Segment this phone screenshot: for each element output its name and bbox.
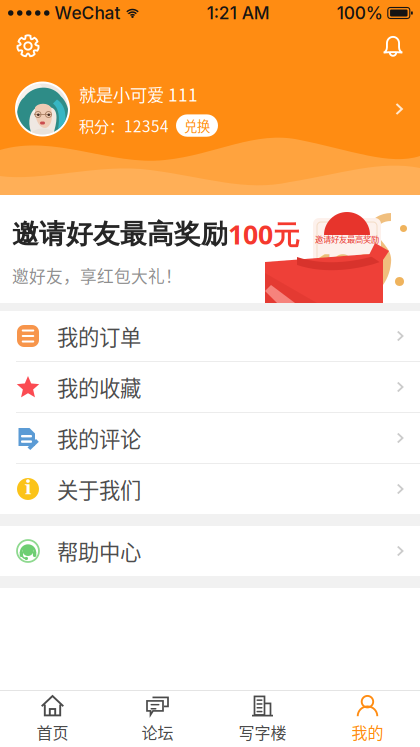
button[interactable]: 我的 bbox=[315, 691, 420, 747]
staticText: 我的 bbox=[351, 720, 383, 744]
staticText: 就是小可爱 111 bbox=[79, 81, 198, 106]
staticText: 我的评论 bbox=[57, 423, 141, 453]
staticText: 100元 bbox=[228, 216, 300, 252]
staticText: 帮助中心 bbox=[57, 536, 141, 566]
button[interactable]: 我的收藏 bbox=[0, 362, 420, 412]
button[interactable]: 论坛 bbox=[105, 691, 210, 747]
staticText: 关于我们 bbox=[57, 474, 141, 504]
staticText: 邀请好友最高奖励 bbox=[315, 233, 379, 245]
button[interactable]: Settings bbox=[4, 26, 52, 66]
staticText: 1:21 AM bbox=[207, 2, 270, 23]
staticText: 100 bbox=[318, 246, 376, 286]
staticText: WeChat bbox=[49, 2, 125, 23]
button[interactable]: 我的评论 bbox=[0, 413, 420, 463]
staticText: 我的订单 bbox=[57, 321, 141, 351]
staticText: 兑换 bbox=[184, 116, 210, 135]
button[interactable]: 就是小可爱 111 bbox=[0, 72, 420, 146]
staticText: 邀请好友最高奖励 bbox=[12, 217, 228, 251]
staticText: 邀好友，享红包大礼！ bbox=[12, 263, 182, 287]
button[interactable]: 帮助中心 bbox=[0, 526, 420, 576]
staticText: 积分：12354 bbox=[79, 114, 169, 137]
button[interactable]: Notifications bbox=[369, 26, 417, 66]
staticText: 写字楼 bbox=[238, 720, 286, 744]
button[interactable]: 邀请好友最高奖励 bbox=[0, 195, 420, 303]
button[interactable]: 首页 bbox=[0, 691, 105, 747]
button[interactable]: i bbox=[0, 464, 420, 514]
staticText: 首页 bbox=[36, 720, 68, 744]
staticText: 我的收藏 bbox=[57, 372, 141, 402]
staticText: i bbox=[24, 476, 31, 501]
button[interactable]: 我的订单 bbox=[0, 311, 420, 361]
staticText: 论坛 bbox=[141, 720, 173, 744]
button[interactable]: 写字楼 bbox=[210, 691, 315, 747]
staticText: 100% bbox=[337, 2, 388, 23]
